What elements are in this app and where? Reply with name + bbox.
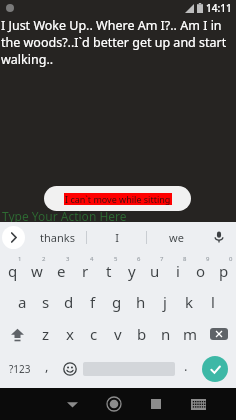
staticText: x [66, 324, 74, 344]
staticText: o [196, 261, 206, 281]
staticText: c [90, 324, 98, 344]
button[interactable]: 1 [1, 252, 25, 286]
staticText: p [219, 261, 229, 281]
button[interactable]: l [201, 286, 225, 318]
staticText: m [183, 324, 198, 344]
staticText: z [42, 324, 50, 344]
button[interactable]: s [34, 286, 57, 318]
staticText: thanks [40, 230, 75, 245]
staticText: 6 [137, 255, 141, 263]
staticText: 0 [229, 255, 233, 263]
button[interactable]: 9 [189, 252, 212, 286]
button[interactable]: thanks [28, 222, 86, 252]
button[interactable]: Switch keyboard [177, 388, 219, 420]
button[interactable]: 8 [166, 252, 189, 286]
button[interactable]: Hide keyboard [51, 388, 93, 420]
staticText: 4 [90, 255, 94, 263]
button[interactable]: Shift [0, 318, 34, 350]
staticText: q [8, 261, 18, 281]
staticText: i [176, 261, 180, 281]
staticText: 9 [206, 255, 210, 263]
button[interactable]: Send [202, 356, 228, 382]
button[interactable]: 6 [120, 252, 143, 286]
button[interactable]: v [106, 318, 130, 350]
button[interactable]: I [87, 222, 146, 252]
staticText: . [184, 357, 188, 375]
button[interactable]: 3 [49, 252, 73, 286]
staticText: d [64, 292, 74, 312]
button[interactable]: I can`t move while sitting [44, 186, 191, 211]
staticText: t [106, 261, 112, 281]
button[interactable]: . [175, 350, 197, 388]
button[interactable]: z [34, 318, 58, 350]
staticText: j [163, 292, 167, 312]
staticText: 1 [18, 255, 22, 263]
staticText: Type Your Action Here [2, 208, 127, 224]
button[interactable]: n [154, 318, 178, 350]
staticText: 7 [160, 255, 164, 263]
button[interactable]: 0 [212, 252, 235, 286]
staticText: I Just Woke Up.. Where Am I?.. Am I in t… [1, 17, 232, 68]
staticText: s [42, 292, 50, 312]
button[interactable]: 2 [25, 252, 49, 286]
staticText: k [185, 292, 194, 312]
button[interactable]: c [82, 318, 106, 350]
button[interactable]: 7 [143, 252, 166, 286]
staticText: I [115, 230, 119, 245]
button[interactable]: 4 [73, 252, 97, 286]
button[interactable]: Recents [135, 388, 177, 420]
staticText: I can`t move while sitting [65, 193, 171, 205]
button[interactable]: a [11, 286, 34, 318]
button[interactable]: Backspace [202, 318, 236, 350]
staticText: 3 [66, 255, 70, 263]
button[interactable]: j [153, 286, 177, 318]
button[interactable]: Emoji [57, 350, 83, 388]
staticText: u [150, 261, 160, 281]
staticText: n [161, 324, 171, 344]
button[interactable]: h [129, 286, 153, 318]
button[interactable]: d [57, 286, 81, 318]
staticText: g [112, 292, 122, 312]
staticText: , [45, 357, 49, 375]
button[interactable]: we [147, 222, 206, 252]
staticText: f [90, 292, 96, 312]
staticText: e [57, 261, 66, 281]
staticText: 8 [183, 255, 187, 263]
button[interactable]: x [58, 318, 82, 350]
button[interactable]: Home [93, 388, 135, 420]
button[interactable]: f [81, 286, 105, 318]
staticText: 14:11 [206, 1, 232, 15]
staticText: w [31, 261, 43, 281]
button[interactable]: Voice input [206, 222, 232, 252]
button[interactable]: 5 [97, 252, 120, 286]
button[interactable]: m [178, 318, 202, 350]
staticText: r [82, 261, 89, 281]
button[interactable]: , [37, 350, 57, 388]
button[interactable]: b [130, 318, 154, 350]
staticText: h [136, 292, 146, 312]
button[interactable]: More suggestions [2, 226, 25, 249]
staticText: 2 [42, 255, 46, 263]
staticText: l [211, 292, 215, 312]
staticText: ?123 [9, 362, 31, 376]
button[interactable]: ?123 [3, 350, 37, 388]
staticText: we [169, 230, 184, 245]
button[interactable]: g [105, 286, 129, 318]
staticText: y [128, 261, 136, 281]
button[interactable]: k [177, 286, 201, 318]
staticText: 5 [114, 255, 118, 263]
staticText: v [114, 324, 122, 344]
staticText: b [137, 324, 147, 344]
staticText: a [18, 292, 27, 312]
